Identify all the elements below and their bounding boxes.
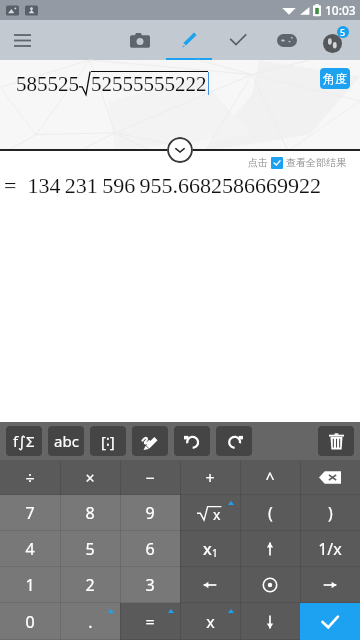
- button[interactable]: 0: [0, 603, 60, 640]
- staticText: 角度: [323, 71, 347, 86]
- staticText: 1: [212, 546, 218, 560]
- button[interactable]: x: [180, 603, 240, 640]
- button[interactable]: Steps: [311, 20, 360, 60]
- button[interactable]: 9: [120, 495, 180, 531]
- staticText: ÷: [25, 467, 35, 489]
- staticText: 8: [85, 502, 95, 524]
- staticText: [∶]: [101, 431, 115, 451]
- staticText: 0: [25, 611, 35, 633]
- staticText: 5: [340, 26, 346, 38]
- button[interactable]: abc: [48, 426, 84, 456]
- button[interactable]: Matrix: [90, 426, 126, 456]
- button[interactable]: Delete all: [318, 426, 354, 456]
- staticText: 9: [145, 502, 155, 524]
- button[interactable]: ÷: [0, 460, 60, 495]
- button[interactable]: 5: [60, 531, 120, 567]
- staticText: = 134 231 596 955.6682586669922: [4, 173, 322, 196]
- button[interactable]: 点击: [248, 156, 346, 169]
- button[interactable]: Undo: [174, 426, 210, 456]
- button[interactable]: Camera: [115, 20, 164, 60]
- button[interactable]: 8: [60, 495, 120, 531]
- button[interactable]: 3: [120, 567, 180, 603]
- button[interactable]: +: [180, 460, 240, 495]
- staticText: ): [328, 502, 333, 524]
- staticText: f∫Σ: [13, 431, 35, 451]
- staticText: 4: [25, 538, 35, 560]
- button[interactable]: .: [60, 603, 120, 640]
- button[interactable]: Write: [164, 20, 213, 60]
- staticText: x: [206, 611, 215, 633]
- staticText: 1/x: [318, 538, 342, 560]
- button[interactable]: ^: [240, 460, 300, 495]
- button[interactable]: Games: [262, 20, 311, 60]
- button[interactable]: down: [240, 603, 300, 640]
- button[interactable]: Expand results: [167, 137, 193, 163]
- staticText: −: [145, 467, 155, 489]
- staticText: .: [88, 611, 93, 633]
- button[interactable]: =: [120, 603, 180, 640]
- button[interactable]: xsub: [180, 531, 240, 567]
- button[interactable]: sqrt: [180, 495, 240, 531]
- button[interactable]: 6: [120, 531, 180, 567]
- button[interactable]: (: [240, 495, 300, 531]
- button[interactable]: Check: [213, 20, 262, 60]
- staticText: 2: [85, 574, 95, 596]
- staticText: +: [205, 467, 215, 489]
- staticText: 52555555222: [91, 72, 207, 95]
- button[interactable]: bksp: [300, 460, 360, 495]
- staticText: 7: [25, 502, 35, 524]
- staticText: abc: [54, 431, 79, 451]
- staticText: 6: [145, 538, 155, 560]
- button[interactable]: Redo: [216, 426, 252, 456]
- staticText: x: [203, 538, 212, 560]
- staticText: 585525: [16, 72, 79, 95]
- staticText: 点击: [248, 156, 268, 169]
- button[interactable]: left: [180, 567, 240, 603]
- button[interactable]: −: [120, 460, 180, 495]
- button[interactable]: f∫Σ menu: [6, 426, 42, 456]
- button[interactable]: ×: [60, 460, 120, 495]
- button[interactable]: 1/x: [300, 531, 360, 567]
- button[interactable]: Menu: [0, 20, 44, 60]
- button[interactable]: check: [300, 603, 360, 640]
- button[interactable]: target: [240, 567, 300, 603]
- button[interactable]: 1: [0, 567, 60, 603]
- staticText: 3: [145, 574, 155, 596]
- staticText: 5: [85, 538, 95, 560]
- staticText: x: [213, 505, 221, 521]
- staticText: 1: [25, 574, 35, 596]
- button[interactable]: up: [240, 531, 300, 567]
- button[interactable]: ): [300, 495, 360, 531]
- staticText: ×: [85, 467, 95, 489]
- button[interactable]: 4: [0, 531, 60, 567]
- button[interactable]: 7: [0, 495, 60, 531]
- button[interactable]: Handwriting: [132, 426, 168, 456]
- staticText: =: [145, 611, 155, 633]
- staticText: ^: [265, 467, 275, 489]
- button[interactable]: 角度: [320, 68, 350, 89]
- button[interactable]: 2: [60, 567, 120, 603]
- staticText: 10:03: [325, 2, 356, 18]
- button[interactable]: right: [300, 567, 360, 603]
- staticText: (: [268, 502, 273, 524]
- staticText: 查看全部结果: [286, 156, 346, 169]
